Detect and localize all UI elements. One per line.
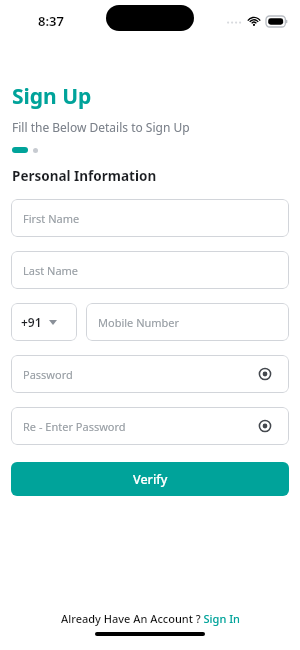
staticText: +91 — [21, 314, 42, 330]
staticText: Password — [23, 367, 73, 382]
button[interactable]: Password — [11, 355, 289, 393]
staticText: Personal Information — [12, 167, 157, 185]
staticText: Verify — [133, 471, 168, 488]
button[interactable]: Already Have An Account ? Sign In — [0, 611, 300, 632]
staticText: Already Have An Account ? Sign In — [61, 611, 240, 626]
staticText: Sign Up — [12, 82, 92, 111]
button[interactable]: Mobile Number — [86, 303, 289, 341]
button[interactable]: Toggle password visibility — [253, 362, 277, 386]
staticText: Mobile Number — [98, 315, 180, 330]
staticText: First Name — [23, 211, 80, 226]
button[interactable]: Last Name — [11, 251, 289, 289]
button[interactable]: Re - Enter Password — [11, 407, 289, 445]
staticText: Re - Enter Password — [23, 419, 126, 434]
button[interactable]: +91 — [11, 303, 77, 341]
button[interactable]: First Name — [11, 199, 289, 237]
button[interactable]: Toggle password visibility — [253, 414, 277, 438]
staticText: Last Name — [23, 263, 79, 278]
staticText: Fill the Below Details to Sign Up — [12, 119, 190, 135]
button[interactable]: Verify — [11, 462, 289, 496]
staticText: 8:37 — [38, 12, 64, 30]
